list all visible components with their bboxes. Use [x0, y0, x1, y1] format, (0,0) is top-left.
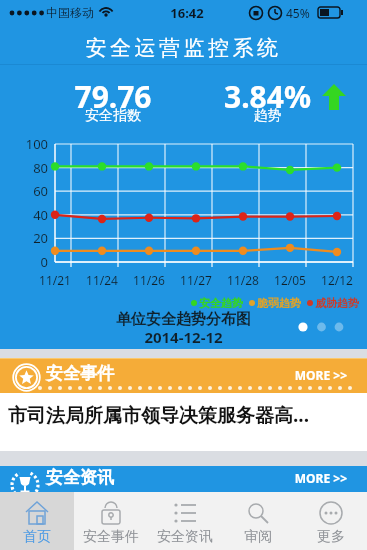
- staticText: 安全指数: [40, 107, 186, 125]
- staticText: 威胁趋势: [315, 296, 359, 310]
- staticText: 首页: [23, 528, 51, 546]
- staticText: MORE >>: [0, 470, 347, 486]
- staticText: 安全事件: [46, 363, 114, 384]
- button[interactable]: 安全资讯: [0, 466, 367, 492]
- staticText: 100: [14, 135, 48, 153]
- button[interactable]: 审阅: [221, 492, 294, 550]
- staticText: 11/21: [32, 272, 78, 288]
- staticText: 11/24: [79, 272, 125, 288]
- staticText: MORE >>: [0, 367, 347, 383]
- staticText: 审阅: [244, 528, 272, 546]
- staticText: 中国移动: [46, 5, 94, 20]
- staticText: 安全运营监控系统: [0, 35, 367, 61]
- staticText: 11/28: [220, 272, 266, 288]
- staticText: 60: [14, 182, 48, 200]
- staticText: 单位安全趋势分布图: [0, 310, 367, 329]
- staticText: 安全事件: [83, 528, 139, 546]
- staticText: 市司法局所属市领导决策服务器高...: [8, 402, 310, 428]
- staticText: 12/05: [267, 272, 313, 288]
- button[interactable]: 市司法局所属市领导决策服务器高...: [0, 393, 367, 451]
- staticText: 脆弱趋势: [257, 296, 301, 310]
- staticText: 40: [14, 206, 48, 224]
- staticText: 安全资讯: [157, 528, 213, 546]
- staticText: 安全趋势: [199, 296, 243, 310]
- staticText: 安全资讯: [46, 467, 114, 488]
- staticText: 16:42: [160, 4, 214, 22]
- button[interactable]: 安全事件: [0, 358, 367, 393]
- staticText: 更多: [317, 528, 345, 546]
- button[interactable]: 首页: [0, 492, 74, 550]
- staticText: 12/12: [314, 272, 360, 288]
- staticText: 79.76: [40, 76, 186, 117]
- button[interactable]: 更多: [294, 492, 367, 550]
- staticText: 0: [14, 253, 48, 271]
- staticText: 2014-12-12: [0, 327, 367, 347]
- staticText: 80: [14, 159, 48, 177]
- staticText: 3.84%: [200, 76, 335, 117]
- button[interactable]: 安全事件: [74, 492, 148, 550]
- staticText: 45%: [286, 5, 310, 21]
- staticText: 趋势: [200, 107, 335, 125]
- button[interactable]: 安全资讯: [148, 492, 221, 550]
- staticText: 20: [14, 229, 48, 247]
- staticText: 11/26: [126, 272, 172, 288]
- staticText: 11/27: [173, 272, 219, 288]
